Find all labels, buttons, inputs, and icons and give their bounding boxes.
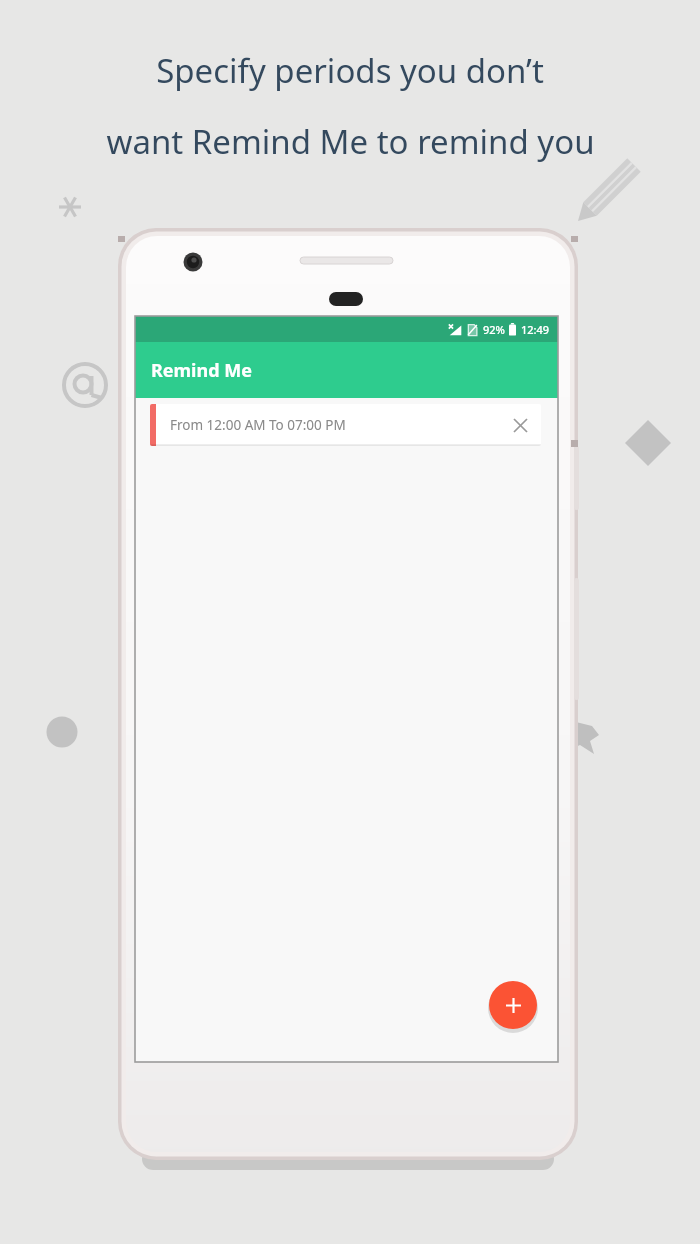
staticText: 12:49	[521, 322, 550, 337]
staticText: 92%	[483, 322, 505, 337]
staticText: From 12:00 AM To 07:00 PM	[170, 416, 346, 434]
staticText: Specify periods you don’t	[156, 48, 544, 93]
button[interactable]: Delete period	[505, 410, 535, 440]
staticText: want Remind Me to remind you	[106, 119, 595, 164]
button[interactable]: Add period	[489, 981, 537, 1029]
button[interactable]: From 12:00 AM To 07:00 PM	[150, 404, 541, 446]
staticText: Remind Me	[151, 358, 252, 383]
